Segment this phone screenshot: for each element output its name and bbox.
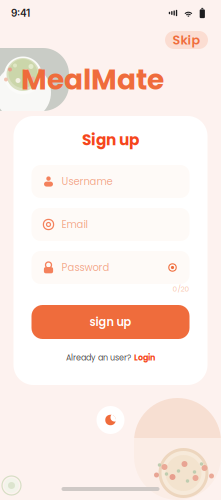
button[interactable]: Email xyxy=(31,208,189,241)
staticText: Sign up xyxy=(82,129,139,151)
staticText: Skip xyxy=(172,31,200,49)
staticText: 0/20 xyxy=(172,284,189,294)
staticText: MealMate xyxy=(21,60,164,99)
button[interactable]: Login xyxy=(134,352,155,363)
button[interactable]: Password xyxy=(31,251,189,284)
staticText: Email xyxy=(61,217,87,231)
button[interactable]: sign up xyxy=(31,305,189,339)
staticText: Already an user? xyxy=(66,352,131,363)
button[interactable]: Menu xyxy=(96,406,124,434)
staticText: Username xyxy=(61,174,112,188)
staticText: 9:41 xyxy=(11,7,30,19)
button[interactable]: Username xyxy=(31,165,189,198)
staticText: Password xyxy=(61,260,109,274)
staticText: Login xyxy=(134,352,155,363)
staticText: sign up xyxy=(89,314,131,330)
button[interactable]: Skip xyxy=(165,31,208,49)
